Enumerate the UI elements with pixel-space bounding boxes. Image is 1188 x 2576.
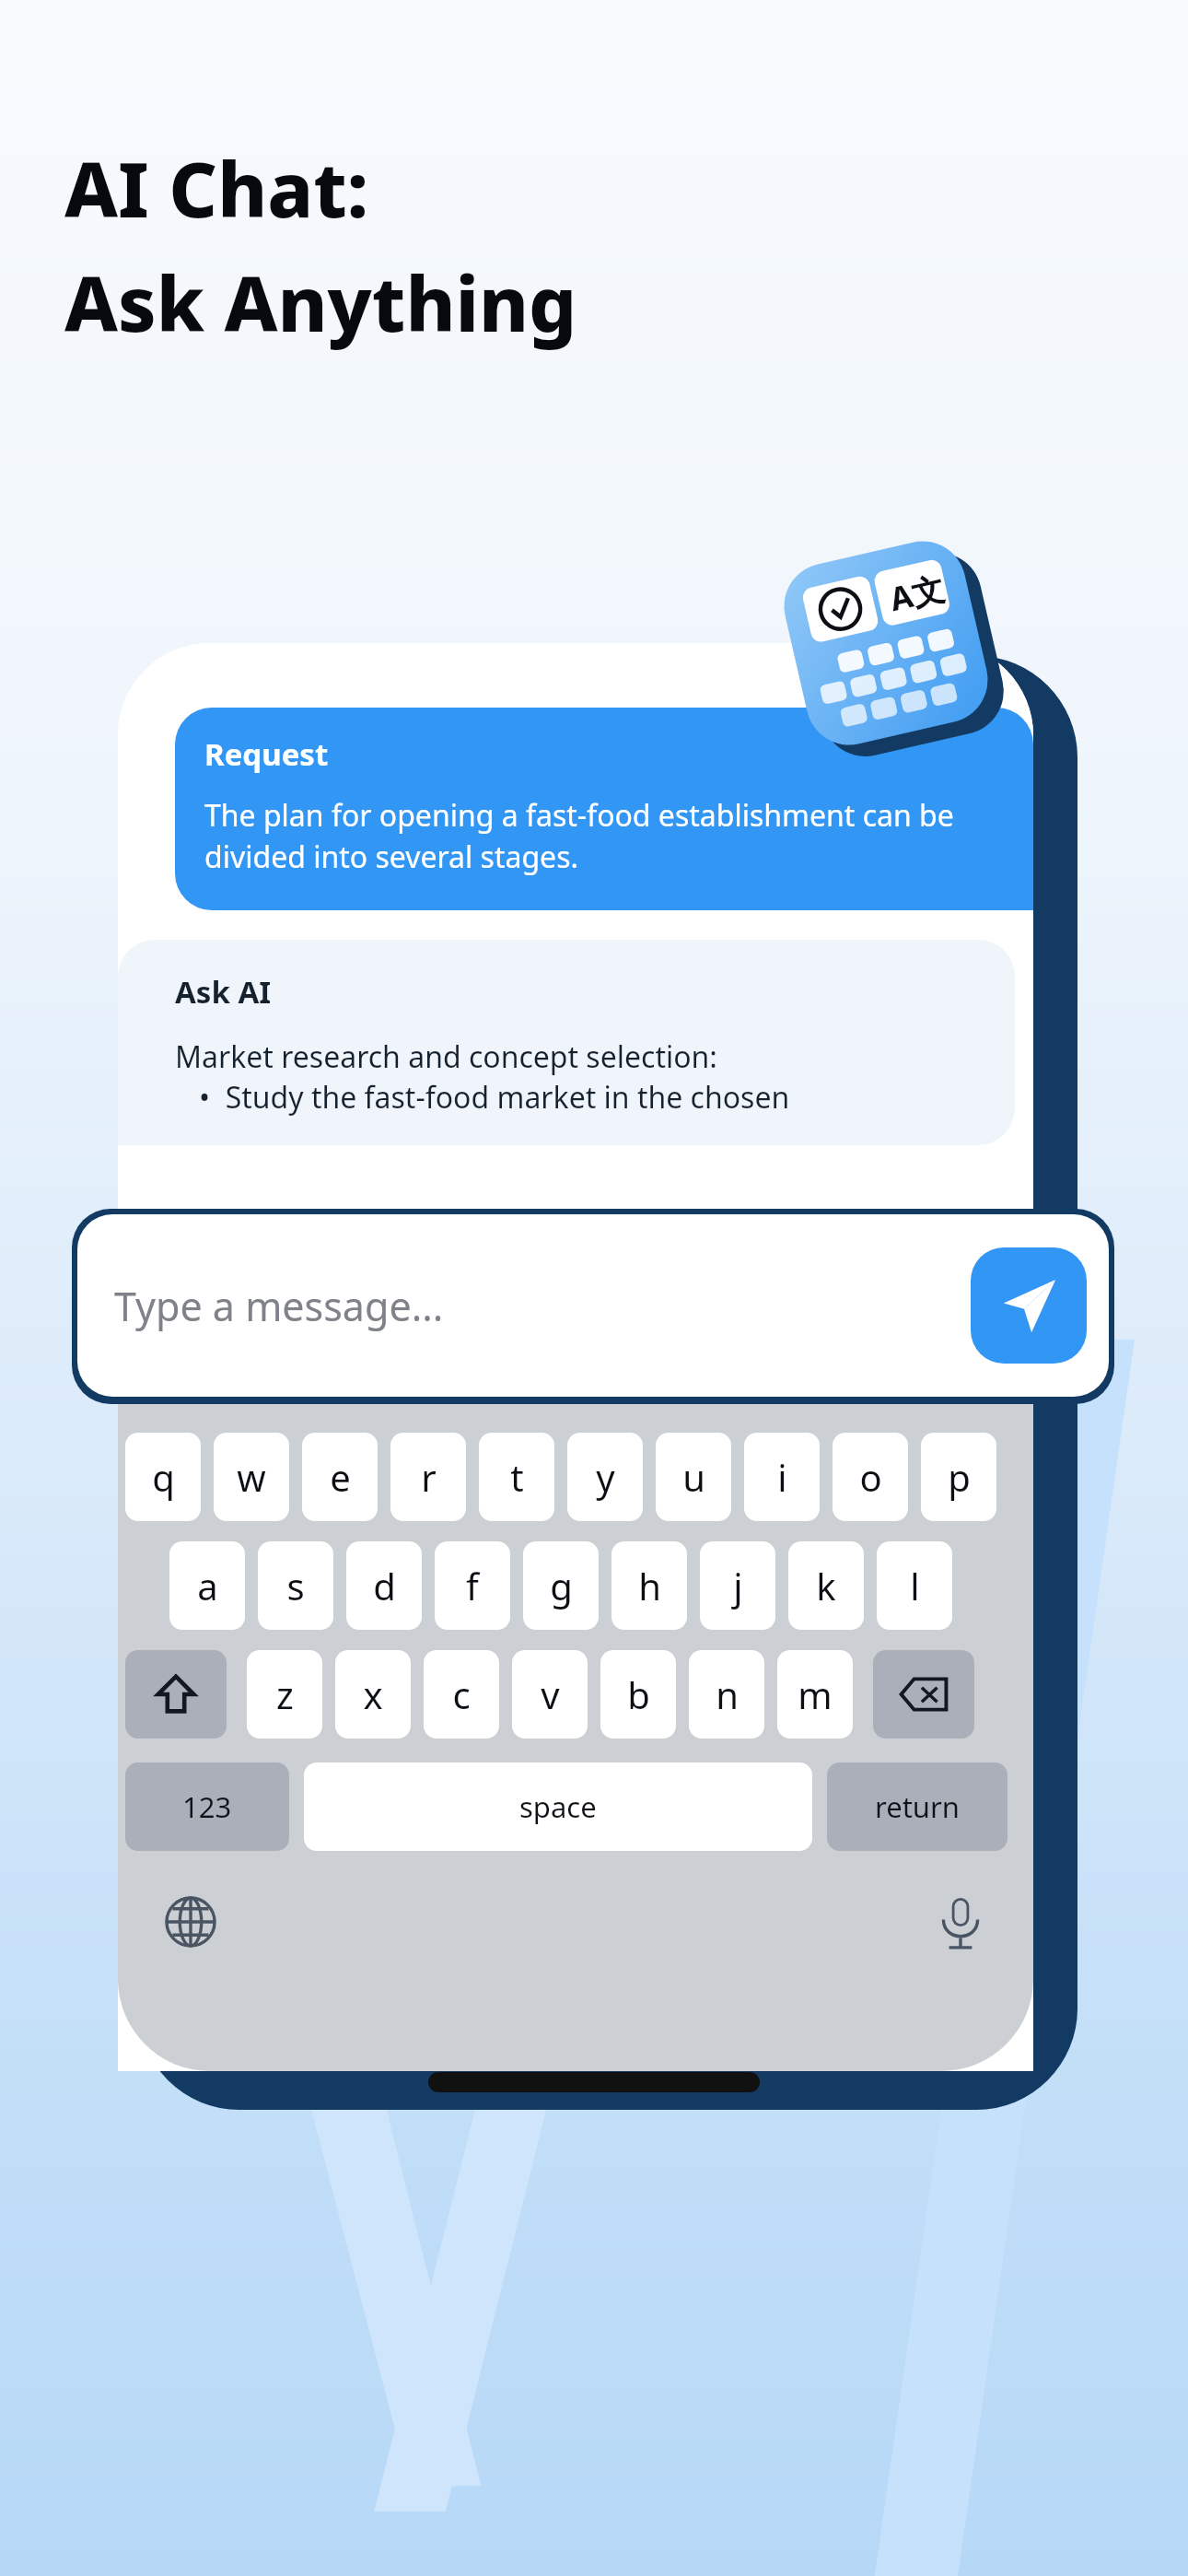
staticText: e [330, 1452, 351, 1502]
button[interactable]: b [600, 1650, 676, 1739]
staticText: AI Chat: [64, 136, 369, 240]
staticText: return [875, 1787, 960, 1826]
staticText: A文 [885, 566, 949, 621]
staticText: Type a message... [114, 1279, 444, 1333]
button[interactable]: Voice input [932, 1893, 989, 1950]
button[interactable]: f [435, 1541, 510, 1630]
staticText: space [519, 1787, 597, 1826]
button[interactable]: i [744, 1433, 820, 1521]
button[interactable]: z [247, 1650, 322, 1739]
staticText: r [421, 1452, 437, 1502]
button[interactable]: Key [125, 1650, 227, 1739]
staticText: x [363, 1669, 383, 1719]
staticText: s [286, 1561, 305, 1610]
staticText: y [596, 1452, 615, 1502]
staticText: q [152, 1452, 175, 1502]
button[interactable]: e [302, 1433, 378, 1521]
button[interactable]: c [424, 1650, 499, 1739]
staticText: d [373, 1561, 396, 1610]
staticText: n [716, 1669, 739, 1719]
staticText: w [237, 1452, 266, 1502]
button[interactable]: Change keyboard language [162, 1893, 219, 1950]
staticText: Market research and concept selection: [175, 1036, 717, 1077]
staticText: j [733, 1561, 743, 1610]
staticText: • Study the fast-food market in the chos… [199, 1077, 790, 1118]
staticText: u [682, 1452, 705, 1502]
button[interactable]: 123 [125, 1762, 289, 1851]
staticText: p [948, 1452, 971, 1502]
button[interactable]: g [523, 1541, 599, 1630]
staticText: 123 [182, 1787, 232, 1826]
button[interactable]: k [788, 1541, 864, 1630]
staticText: g [550, 1561, 573, 1610]
button[interactable]: h [611, 1541, 687, 1630]
button[interactable]: w [214, 1433, 289, 1521]
staticText: a [197, 1561, 218, 1610]
staticText: Ask AI [175, 971, 272, 1013]
button[interactable]: space [304, 1762, 812, 1851]
button[interactable]: o [833, 1433, 908, 1521]
button[interactable]: n [689, 1650, 764, 1739]
staticText: b [627, 1669, 650, 1719]
button[interactable]: d [346, 1541, 422, 1630]
staticText: f [466, 1561, 479, 1610]
button[interactable]: y [567, 1433, 643, 1521]
staticText: t [510, 1452, 524, 1502]
button[interactable]: l [877, 1541, 952, 1630]
button[interactable]: p [921, 1433, 996, 1521]
button[interactable]: Request [175, 708, 1033, 910]
staticText: h [638, 1561, 661, 1610]
staticText: Ask Anything [64, 251, 577, 354]
button[interactable]: q [125, 1433, 201, 1521]
staticText: i [777, 1452, 787, 1502]
button[interactable]: v [512, 1650, 588, 1739]
staticText: Request [204, 733, 329, 775]
staticText: The plan for opening a fast-food establi… [204, 795, 1007, 877]
staticText: m [798, 1669, 833, 1719]
button[interactable]: Ask AI [118, 940, 1015, 1145]
button[interactable]: j [700, 1541, 775, 1630]
button[interactable]: x [335, 1650, 411, 1739]
staticText: c [452, 1669, 471, 1719]
button[interactable]: Send message [971, 1247, 1087, 1364]
button[interactable]: s [258, 1541, 333, 1630]
button[interactable]: return [827, 1762, 1007, 1851]
staticText: o [859, 1452, 882, 1502]
button[interactable]: u [656, 1433, 731, 1521]
button[interactable]: Type a message... [77, 1214, 1109, 1397]
staticText: z [276, 1669, 294, 1719]
staticText: k [816, 1561, 836, 1610]
staticText: l [910, 1561, 920, 1610]
button[interactable]: a [169, 1541, 245, 1630]
staticText: v [541, 1669, 560, 1719]
button[interactable]: Key [873, 1650, 974, 1739]
button[interactable]: r [390, 1433, 466, 1521]
button[interactable]: t [479, 1433, 554, 1521]
button[interactable]: m [777, 1650, 853, 1739]
